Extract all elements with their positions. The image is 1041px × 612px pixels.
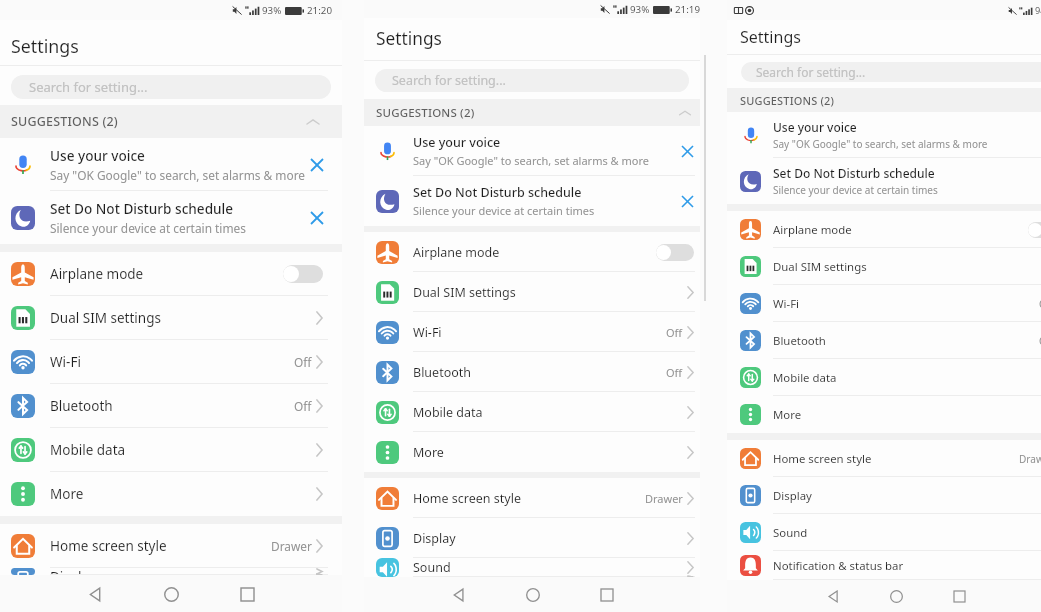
button[interactable]: Mobile data [0, 428, 342, 472]
button[interactable]: Recent apps [232, 579, 262, 609]
staticText: Off [666, 325, 683, 340]
staticText: More [413, 444, 444, 461]
staticText: Home screen style [413, 490, 521, 507]
button[interactable]: Back [80, 579, 110, 609]
button[interactable]: Home screen style [364, 478, 700, 518]
button[interactable]: Display [0, 568, 342, 575]
staticText: Drawer [645, 491, 683, 506]
staticText: Set Do Not Disturb schedule [413, 184, 582, 201]
button[interactable]: Bluetooth [727, 322, 1041, 359]
button[interactable]: Use your voice [727, 112, 1041, 158]
button[interactable]: Dismiss Use your voice [305, 153, 328, 176]
staticText: Search for setting... [756, 64, 866, 80]
staticText: Search for setting... [29, 78, 148, 96]
button[interactable]: Wi-Fi [364, 312, 700, 352]
staticText: 21:20 [307, 4, 333, 17]
staticText: Bluetooth [413, 364, 472, 381]
button[interactable]: Home screen style [0, 524, 342, 568]
button[interactable]: Airplane mode [727, 211, 1041, 248]
staticText: Airplane mode [773, 222, 852, 238]
staticText: Drawer [271, 538, 312, 554]
button[interactable]: Mobile data [364, 392, 700, 432]
staticText: Use your voice [50, 146, 145, 165]
button[interactable]: More [0, 472, 342, 516]
staticText: 94% [1035, 4, 1041, 17]
staticText: Say "OK Google" to search, set alarms & … [773, 137, 988, 151]
staticText: Use your voice [413, 134, 501, 151]
staticText: Set Do Not Disturb schedule [773, 165, 935, 181]
staticText: Wi-Fi [773, 296, 800, 312]
button[interactable]: Dismiss Set Do Not Disturb schedule [677, 191, 698, 212]
staticText: Settings [11, 34, 79, 58]
button[interactable]: Search for setting... [741, 62, 1041, 82]
button[interactable]: Display [364, 518, 700, 558]
button[interactable]: Sound [727, 514, 1041, 551]
staticText: 93% [630, 3, 650, 16]
button[interactable]: Home [518, 580, 547, 609]
staticText: Display [50, 568, 97, 575]
button[interactable]: Dual SIM settings [0, 296, 342, 340]
staticText: Silence your device at certain times [413, 203, 595, 218]
button[interactable]: Dismiss Set Do Not Disturb schedule [305, 206, 328, 229]
button[interactable]: Home screen style [727, 440, 1041, 477]
staticText: 21:19 [675, 3, 701, 16]
button[interactable]: Back [444, 580, 473, 609]
staticText: Search for setting... [392, 72, 506, 89]
button[interactable]: Home [883, 583, 909, 609]
button[interactable]: More [364, 432, 700, 472]
staticText: SUGGESTIONS (2) [11, 113, 118, 130]
button[interactable]: Sound [364, 558, 700, 577]
staticText: SUGGESTIONS (2) [376, 105, 475, 121]
staticText: Bluetooth [773, 333, 826, 349]
staticText: 93% [262, 4, 282, 17]
staticText: Off [294, 354, 312, 370]
button[interactable]: Airplane mode [0, 252, 342, 296]
staticText: Use your voice [773, 119, 857, 135]
button[interactable]: Recent apps [592, 580, 621, 609]
staticText: Bluetooth [50, 397, 113, 415]
button[interactable]: SUGGESTIONS (2) [364, 99, 700, 126]
button[interactable]: Notification & status bar [727, 551, 1041, 580]
button[interactable]: Set Do Not Disturb schedule [364, 176, 700, 226]
button[interactable]: Use your voice [364, 126, 700, 176]
button[interactable]: Wi-Fi [0, 340, 342, 384]
staticText: Say "OK Google" to search, set alarms & … [413, 153, 649, 168]
button[interactable]: SUGGESTIONS (2) [727, 88, 1041, 112]
staticText: Airplane mode [413, 244, 500, 261]
staticText: Display [413, 530, 456, 547]
button[interactable]: Set Do Not Disturb schedule [0, 191, 342, 244]
staticText: Off [294, 398, 312, 414]
staticText: Display [773, 488, 812, 504]
button[interactable]: Search for setting... [375, 69, 689, 92]
button[interactable]: Recent apps [946, 583, 972, 609]
button[interactable]: More [727, 396, 1041, 433]
button[interactable]: Mobile data [727, 359, 1041, 396]
staticText: Wi-Fi [50, 353, 81, 371]
button[interactable]: Dual SIM settings [727, 248, 1041, 285]
button[interactable]: Dual SIM settings [364, 272, 700, 312]
button[interactable]: Display [727, 477, 1041, 514]
staticText: Say "OK Google" to search, set alarms & … [50, 167, 305, 183]
button[interactable]: Airplane mode [364, 232, 700, 272]
staticText: Dual SIM settings [773, 259, 867, 275]
staticText: Settings [376, 27, 442, 51]
staticText: Set Do Not Disturb schedule [50, 199, 234, 218]
staticText: Airplane mode [50, 265, 144, 283]
button[interactable]: Back [820, 583, 846, 609]
staticText: Mobile data [773, 370, 837, 386]
button[interactable]: SUGGESTIONS (2) [0, 105, 342, 138]
staticText: Notification & status bar [773, 558, 904, 574]
staticText: Sound [413, 559, 451, 576]
button[interactable]: Dismiss Use your voice [677, 141, 698, 162]
staticText: Silence your device at certain times [773, 183, 938, 197]
button[interactable]: Home [156, 579, 186, 609]
button[interactable]: Search for setting... [11, 75, 331, 99]
staticText: Settings [740, 26, 801, 48]
button[interactable]: Bluetooth [0, 384, 342, 428]
button[interactable]: Bluetooth [364, 352, 700, 392]
staticText: Dual SIM settings [413, 284, 516, 301]
button[interactable]: Wi-Fi [727, 285, 1041, 322]
button[interactable]: Use your voice [0, 138, 342, 191]
button[interactable]: Set Do Not Disturb schedule [727, 158, 1041, 204]
staticText: Off [666, 365, 683, 380]
